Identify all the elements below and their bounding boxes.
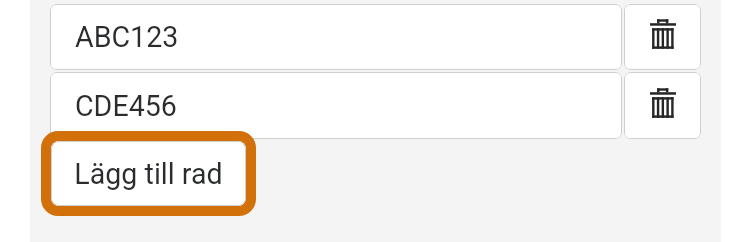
staticText: ABC123 bbox=[75, 20, 179, 54]
button[interactable]: ABC123 bbox=[50, 4, 622, 70]
staticText: Lägg till rad bbox=[74, 157, 223, 191]
staticText: CDE456 bbox=[75, 89, 177, 123]
button[interactable]: Ta bort rad bbox=[624, 72, 701, 139]
button[interactable]: CDE456 bbox=[50, 72, 622, 139]
button[interactable]: Ta bort rad bbox=[624, 4, 701, 70]
button[interactable]: Lägg till rad bbox=[41, 131, 256, 216]
